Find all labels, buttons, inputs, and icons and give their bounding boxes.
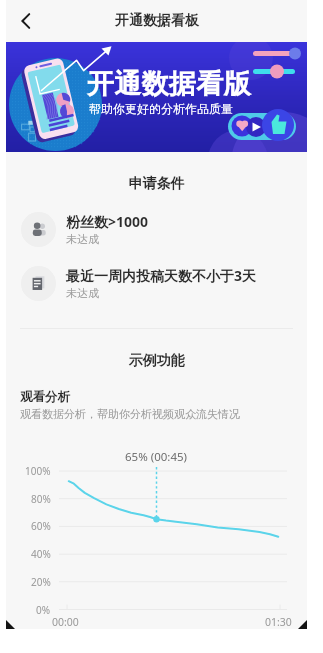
staticText: 申请条件 — [6, 175, 307, 193]
staticText: 观看分析 — [20, 389, 70, 405]
button[interactable]: 粉丝数>1000 — [6, 211, 307, 247]
staticText: 开通数据看板 — [115, 12, 199, 30]
staticText: 未达成 — [66, 286, 99, 300]
staticText: 最近一周内投稿天数不小于3天 — [66, 266, 257, 285]
staticText: 00:00 — [52, 615, 79, 629]
staticText: 60% — [31, 519, 51, 533]
staticText: 未达成 — [66, 232, 99, 246]
staticText: 65% (00:45) — [125, 449, 187, 465]
staticText: 01:30 — [265, 615, 292, 629]
staticText: 开通数据看版 — [87, 67, 251, 101]
staticText: 帮助你更好的分析作品质量 — [89, 101, 233, 116]
staticText: 80% — [31, 492, 51, 506]
staticText: 20% — [31, 575, 51, 589]
staticText: 40% — [31, 547, 51, 561]
button[interactable]: 最近一周内投稿天数不小于3天 — [6, 265, 307, 301]
button[interactable]: Back — [6, 1, 46, 41]
staticText: 粉丝数>1000 — [66, 212, 149, 231]
staticText: 100% — [25, 464, 51, 478]
staticText: 0% — [36, 603, 51, 617]
staticText: 观看数据分析，帮助你分析视频观众流失情况 — [20, 407, 240, 421]
staticText: 示例功能 — [6, 352, 307, 370]
